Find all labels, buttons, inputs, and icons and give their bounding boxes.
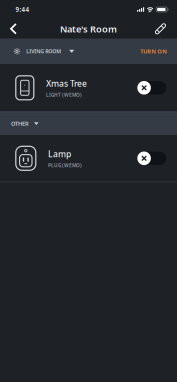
staticText: LIVING ROOM: [26, 48, 61, 55]
staticText: PLUG (WEMO): [48, 162, 82, 168]
staticText: Xmas Tree: [46, 77, 87, 89]
staticText: Lamp: [48, 148, 71, 160]
button[interactable]: TURN ON: [140, 40, 167, 62]
staticText: 9:44: [15, 5, 29, 14]
staticText: Nate's Room: [60, 22, 117, 35]
button[interactable]: Xmas Tree: [0, 64, 177, 112]
button[interactable]: Edit: [150, 19, 171, 39]
button[interactable]: Back: [3, 19, 24, 39]
staticText: LIGHT (WEMO): [46, 91, 82, 98]
staticText: OTHER: [11, 120, 29, 127]
button[interactable]: LIVING ROOM: [14, 41, 74, 62]
staticText: TURN ON: [140, 47, 167, 55]
button[interactable]: Lamp: [0, 135, 177, 182]
